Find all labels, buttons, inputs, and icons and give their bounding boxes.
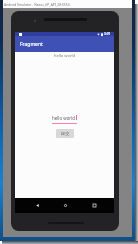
button[interactable]: Home [62, 202, 68, 208]
button[interactable]: Recent apps [91, 202, 97, 208]
button[interactable]: hello world [52, 115, 77, 121]
button[interactable]: 提交 [56, 129, 74, 138]
staticText: 提交 [61, 131, 70, 136]
staticText: 3:01 [104, 32, 111, 36]
staticText: Fragment [20, 41, 43, 48]
staticText: Android Emulator - Nexus_6P_API_28:5554 [4, 2, 70, 6]
button[interactable]: Back [34, 202, 40, 208]
staticText: hello world [54, 53, 75, 58]
staticText: hello world [52, 115, 76, 121]
